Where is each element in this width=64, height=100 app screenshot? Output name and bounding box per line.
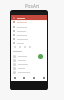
staticText: PicsArt: [0, 3, 64, 9]
button[interactable]: [11, 29, 47, 33]
button[interactable]: Tab 2: [32, 76, 35, 79]
button[interactable]: Tab 0: [13, 76, 16, 79]
button[interactable]: [11, 33, 47, 37]
other: Menu: [13, 17, 15, 19]
button[interactable]: Tab 3: [42, 76, 45, 79]
button[interactable]: [11, 20, 47, 24]
button[interactable]: [11, 41, 47, 45]
button[interactable]: [11, 62, 47, 66]
button[interactable]: [11, 70, 47, 74]
button[interactable]: [11, 58, 47, 62]
button[interactable]: Tab 1: [22, 76, 25, 79]
button[interactable]: [11, 54, 47, 58]
button[interactable]: [11, 25, 47, 29]
button[interactable]: [11, 66, 47, 70]
button[interactable]: [11, 37, 47, 41]
button[interactable]: Menu: [11, 15, 47, 20]
button[interactable]: Add: [38, 54, 43, 59]
